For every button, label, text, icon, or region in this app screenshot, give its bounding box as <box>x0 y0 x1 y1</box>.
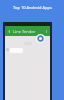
staticText: Line Tender <box>13 29 36 34</box>
button[interactable]: More options <box>44 29 49 34</box>
button[interactable]: Back <box>7 29 12 34</box>
button[interactable]: Search <box>36 34 45 43</box>
staticText: Top 10 Android Apps <box>13 5 52 10</box>
button[interactable]: Back <box>5 26 50 36</box>
